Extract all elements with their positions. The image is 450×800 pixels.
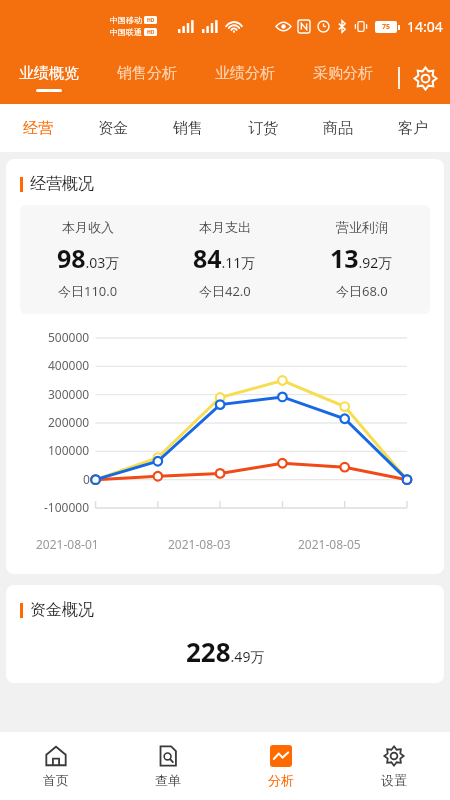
- staticText: 中国移动: [110, 15, 142, 25]
- staticText: 销售: [173, 119, 203, 138]
- staticText: 300000: [48, 386, 90, 402]
- staticText: 本月支出: [199, 219, 251, 235]
- button[interactable]: 业绩概览: [0, 52, 98, 104]
- staticText: 400000: [48, 357, 90, 373]
- button[interactable]: 客户: [375, 104, 450, 152]
- staticText: 首页: [43, 772, 69, 788]
- staticText: 经营概况: [30, 174, 94, 194]
- staticText: 营业利润: [336, 219, 388, 235]
- staticText: 500000: [48, 329, 90, 345]
- button[interactable]: 订货: [225, 104, 300, 152]
- staticText: 200000: [48, 414, 90, 430]
- staticText: 0: [83, 471, 90, 487]
- staticText: 订货: [248, 119, 278, 138]
- staticText: 98.03万: [57, 241, 120, 275]
- staticText: HD: [147, 17, 155, 24]
- staticText: HD: [147, 29, 155, 36]
- staticText: 84.11万: [193, 241, 256, 275]
- staticText: 业绩概览: [19, 64, 79, 83]
- button[interactable]: 资金: [75, 104, 150, 152]
- staticText: -100000: [44, 499, 90, 515]
- button[interactable]: 分析: [224, 732, 337, 800]
- button[interactable]: 采购分析: [294, 52, 392, 104]
- button[interactable]: 业绩分析: [196, 52, 294, 104]
- staticText: 2021-08-05: [298, 536, 361, 552]
- staticText: 分析: [268, 772, 294, 788]
- button[interactable]: 设置: [410, 63, 440, 93]
- staticText: 客户: [398, 119, 428, 138]
- button[interactable]: 销售分析: [98, 52, 196, 104]
- staticText: 采购分析: [313, 64, 373, 83]
- staticText: 资金概况: [30, 600, 94, 620]
- staticText: 100000: [48, 442, 90, 458]
- staticText: 2021-08-01: [36, 536, 99, 552]
- button[interactable]: 设置: [337, 732, 450, 800]
- staticText: 中国联通: [110, 27, 142, 37]
- staticText: 查单: [155, 772, 181, 788]
- button[interactable]: 销售: [150, 104, 225, 152]
- staticText: 今日110.0: [58, 282, 118, 300]
- staticText: 商品: [323, 119, 353, 138]
- staticText: 14:04: [407, 17, 443, 36]
- staticText: 228.49万: [186, 634, 265, 669]
- staticText: 本月收入: [62, 219, 114, 235]
- staticText: 设置: [381, 772, 407, 788]
- staticText: 销售分析: [117, 64, 177, 83]
- button[interactable]: 查单: [112, 732, 224, 800]
- staticText: 今日42.0: [199, 282, 251, 300]
- staticText: 2021-08-03: [168, 536, 231, 552]
- staticText: 业绩分析: [215, 64, 275, 83]
- staticText: 资金: [98, 119, 128, 138]
- button[interactable]: 首页: [0, 732, 112, 800]
- staticText: 13.92万: [330, 241, 393, 275]
- button[interactable]: 经营: [0, 104, 75, 152]
- staticText: 75: [382, 22, 391, 32]
- staticText: 今日68.0: [336, 282, 388, 300]
- button[interactable]: 商品: [300, 104, 375, 152]
- staticText: 经营: [23, 119, 53, 138]
